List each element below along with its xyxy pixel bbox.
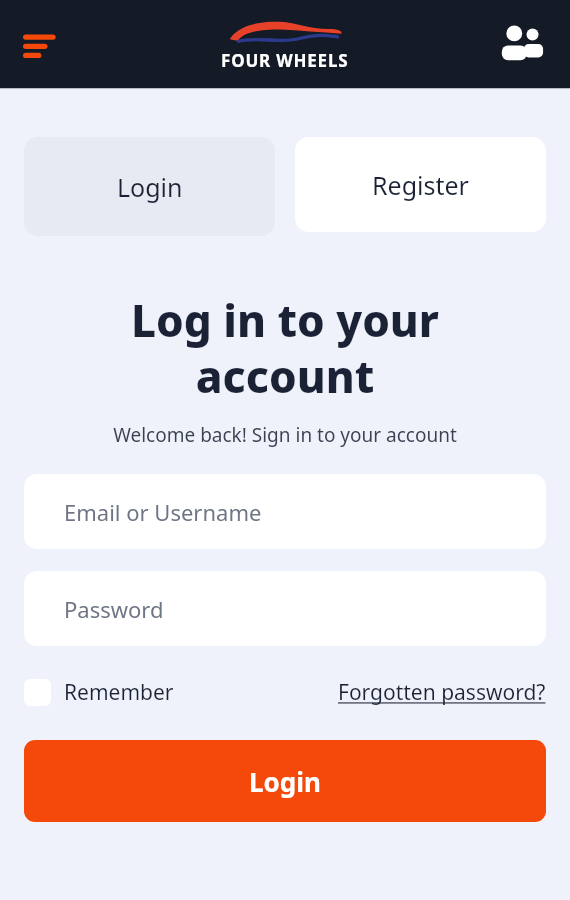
staticText: FOUR WHEELS	[221, 49, 349, 72]
staticText: Email or Username	[64, 497, 262, 527]
staticText: Log in to your account	[24, 290, 546, 406]
button[interactable]: Register	[295, 137, 546, 232]
staticText: Remember	[64, 678, 174, 707]
staticText: Login	[117, 170, 183, 204]
button[interactable]: Login	[24, 137, 275, 236]
button[interactable]: Forgotten password?	[338, 678, 546, 707]
staticText: Password	[64, 594, 164, 624]
button[interactable]: Account	[494, 17, 548, 71]
button[interactable]: Menu	[18, 22, 62, 66]
button[interactable]: Remember	[24, 678, 174, 707]
staticText: Forgotten password?	[338, 678, 546, 707]
staticText: Register	[372, 168, 469, 202]
button[interactable]: Email or Username	[24, 474, 546, 549]
staticText: Login	[249, 764, 321, 799]
staticText: Welcome back! Sign in to your account	[16, 422, 554, 448]
button[interactable]: Login	[24, 740, 546, 822]
button[interactable]: Password	[24, 571, 546, 646]
